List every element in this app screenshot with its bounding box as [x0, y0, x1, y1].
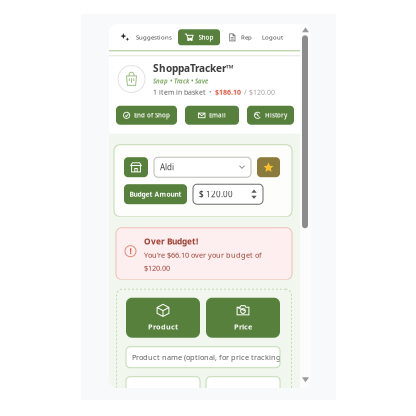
staticText: Price	[234, 322, 252, 332]
staticText: ShoppaTracker™	[153, 61, 234, 75]
staticText: Logout	[262, 33, 283, 41]
staticText: !	[129, 246, 131, 257]
button[interactable]: History	[247, 106, 294, 125]
button[interactable]: Suggestions	[114, 30, 178, 45]
staticText: Shop	[198, 33, 213, 41]
button[interactable]: Product	[126, 298, 200, 338]
button[interactable]: Price	[206, 298, 280, 338]
staticText: End of Shop	[134, 111, 170, 119]
button[interactable]: End of Shop	[116, 106, 177, 125]
staticText: You're $66.10 over your budget of	[144, 250, 262, 260]
staticText: $186.10	[215, 87, 241, 97]
staticText: Over Budget!	[144, 236, 198, 247]
staticText: Product name (optional, for price tracki…	[132, 352, 283, 362]
button[interactable]: Logout	[257, 30, 288, 45]
button[interactable]: Aldi	[154, 157, 251, 177]
staticText: Suggestions	[136, 33, 172, 41]
staticText: Snap • Track • Save	[153, 77, 208, 85]
button[interactable]: Favourite store	[257, 157, 280, 177]
button[interactable]: Rep	[220, 30, 257, 45]
button[interactable]: Email	[185, 106, 239, 125]
staticText: •	[209, 87, 212, 97]
staticText: History	[265, 111, 287, 119]
staticText: Email	[209, 111, 226, 119]
staticText: 1 item in basket	[153, 87, 206, 97]
staticText: Rep	[241, 33, 252, 41]
staticText: $120.00	[144, 263, 170, 273]
staticText: Aldi	[160, 162, 174, 173]
button[interactable]: Shop	[178, 29, 220, 45]
staticText: 120.00	[204, 189, 233, 200]
staticText: / $120.00	[244, 87, 275, 97]
staticText: $	[199, 189, 204, 200]
staticText: Budget Amount	[129, 190, 181, 199]
staticText: Product	[148, 322, 178, 332]
button[interactable]: Store	[124, 157, 148, 177]
